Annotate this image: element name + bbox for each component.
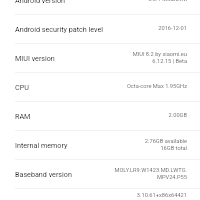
staticText: CPU — [15, 83, 29, 91]
button[interactable]: Android version — [0, 0, 200, 14]
button[interactable]: CPU — [0, 72, 200, 101]
staticText: 3.10.61+x86x64421 — [136, 192, 187, 199]
staticText: Baseband version — [15, 170, 72, 178]
staticText: 2016-12-01 — [158, 25, 187, 32]
staticText: MIUI version — [15, 54, 55, 62]
staticText: MOLY.LR9.W1423.MD.LWTG. — [114, 167, 187, 174]
staticText: MIUI 8.2 by xiaomi.eu — [132, 51, 187, 58]
staticText: Android version — [15, 0, 65, 4]
staticText: 16GB total — [160, 145, 187, 152]
button[interactable]: Baseband version — [0, 159, 200, 188]
staticText: Internal memory — [15, 141, 68, 149]
button[interactable]: MIUI version — [0, 43, 200, 72]
staticText: MPV24.P55 — [156, 174, 187, 181]
staticText: 6.12.15 | Beta — [152, 58, 187, 65]
staticText: 2.76GB available — [144, 138, 187, 145]
staticText: 6.0.1 MMB29M — [148, 0, 187, 3]
staticText: Android security patch level — [15, 25, 104, 33]
button[interactable]: Internal memory — [0, 130, 200, 159]
staticText: 2.00GB — [168, 112, 187, 119]
staticText: RAM — [15, 112, 31, 120]
button[interactable]: Kernel version — [0, 188, 200, 200]
button[interactable]: RAM — [0, 101, 200, 130]
button[interactable]: Android security patch level — [0, 14, 200, 43]
staticText: Octa-core Max 1.95GHz — [126, 83, 187, 90]
